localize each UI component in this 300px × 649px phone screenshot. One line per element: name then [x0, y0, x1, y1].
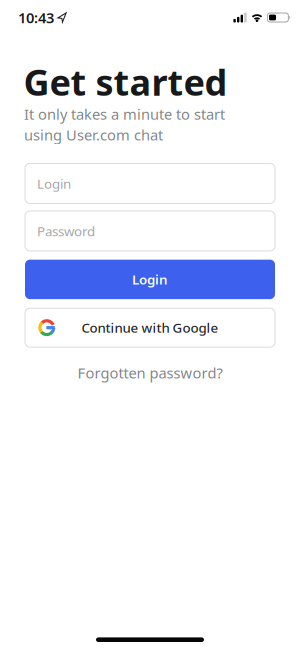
- staticText: 10:43: [18, 8, 54, 27]
- button[interactable]: Continue with Google: [25, 308, 275, 347]
- staticText: Login: [132, 271, 168, 288]
- staticText: Password: [37, 222, 95, 240]
- button[interactable]: Password: [25, 211, 275, 251]
- button[interactable]: Login: [25, 260, 275, 299]
- staticText: Continue with Google: [81, 319, 218, 336]
- staticText: Login: [37, 175, 71, 192]
- staticText: It only takes a minute to start using Us…: [24, 104, 225, 144]
- staticText: Get started: [23, 58, 227, 106]
- button[interactable]: Forgotten password?: [77, 363, 222, 383]
- button[interactable]: Login: [25, 163, 275, 203]
- staticText: Forgotten password?: [77, 363, 222, 383]
